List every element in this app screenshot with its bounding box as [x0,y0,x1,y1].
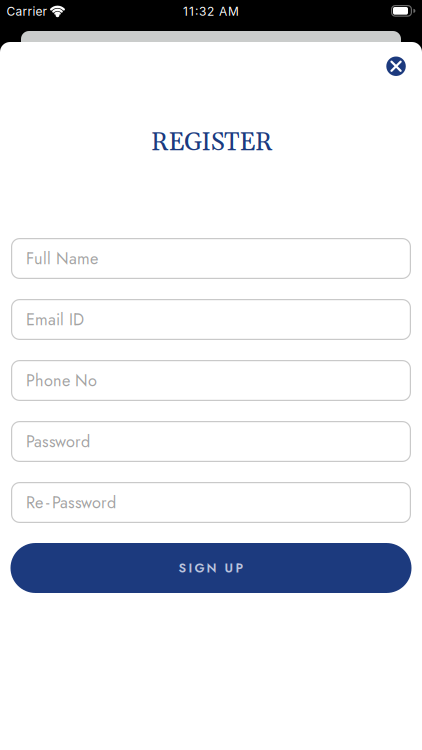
button[interactable]: Email ID [11,299,411,340]
staticText: Password [26,430,90,453]
staticText: Phone No [26,369,97,392]
button[interactable]: Re-Password [11,482,411,523]
staticText: Email ID [26,308,84,331]
staticText: SIGN UP [178,559,243,577]
button[interactable]: Phone No [11,360,411,401]
staticText: REGISTER [151,127,273,159]
button[interactable]: Full Name [11,238,411,279]
staticText: Carrier [6,4,47,19]
button[interactable]: SIGN UP [10,543,411,593]
staticText: Re - Password [26,491,116,514]
button[interactable]: Close [386,56,406,76]
staticText: 11:32 AM [183,4,239,19]
button[interactable]: Password [11,421,411,462]
staticText: Full Name [26,247,98,270]
